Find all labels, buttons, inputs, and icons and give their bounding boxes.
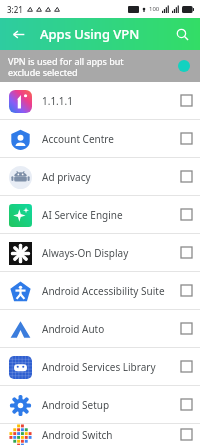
staticText: 100 (149, 5, 160, 13)
button[interactable]: Ad privacy (0, 158, 200, 195)
button[interactable]: AI Service Engine (0, 196, 200, 233)
staticText: 3:21 (7, 4, 23, 15)
button[interactable]: Account Centre (0, 120, 200, 157)
button[interactable]: Android Auto (0, 310, 200, 347)
staticText: Account Centre (42, 132, 181, 146)
button[interactable]: Back (6, 22, 30, 46)
staticText: VPN is used for all apps but exclude sel… (8, 55, 124, 78)
staticText: Android Switch (42, 428, 181, 442)
staticText: Android Setup (42, 398, 181, 412)
staticText: Android Services Library (42, 360, 181, 374)
staticText: Always-On Display (42, 246, 181, 260)
staticText: Android Auto (42, 322, 181, 336)
button[interactable]: Android Accessibility Suite (0, 272, 200, 309)
button[interactable]: Android Switch (0, 424, 200, 445)
button[interactable]: Always-On Display (0, 234, 200, 271)
staticText: Ad privacy (42, 170, 181, 184)
button[interactable]: Android Setup (0, 386, 200, 423)
button[interactable]: Android Services Library (0, 348, 200, 385)
staticText: Android Accessibility Suite (42, 284, 181, 298)
staticText: Apps Using VPN (40, 25, 140, 43)
button[interactable]: 1.1.1.1 (0, 82, 200, 119)
staticText: AI Service Engine (42, 208, 181, 222)
staticText: 1.1.1.1 (42, 94, 181, 108)
button[interactable]: VPN is used for all apps but exclude sel… (0, 50, 200, 82)
button[interactable]: Search (170, 22, 194, 46)
